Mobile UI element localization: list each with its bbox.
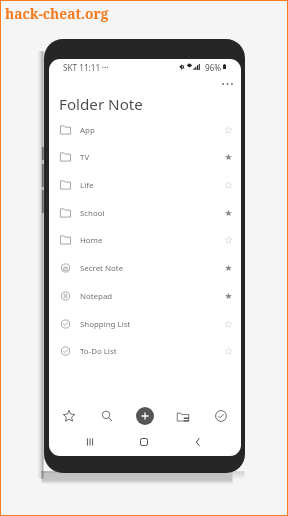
button[interactable]: More options xyxy=(215,72,239,96)
staticText: To-Do List xyxy=(80,346,117,357)
button[interactable]: Tasks xyxy=(210,405,232,427)
button[interactable]: Search xyxy=(96,405,118,427)
button[interactable]: Favourites xyxy=(58,405,80,427)
staticText: School xyxy=(80,208,105,219)
staticText: App xyxy=(80,125,95,136)
button[interactable]: App xyxy=(49,116,241,144)
staticText: Life xyxy=(80,180,94,191)
staticText: Notepad xyxy=(80,291,113,302)
button[interactable]: Life xyxy=(49,171,241,199)
staticText: Shopping List xyxy=(80,319,131,330)
button[interactable]: Add note xyxy=(136,407,154,425)
button[interactable]: School xyxy=(49,199,241,227)
button[interactable]: To-Do List xyxy=(49,337,241,365)
button[interactable]: Secret Note xyxy=(49,254,241,282)
button[interactable]: Home xyxy=(49,226,241,254)
staticText: Folder Note xyxy=(59,94,143,115)
staticText: TV xyxy=(80,152,90,163)
staticText: Home xyxy=(80,235,103,246)
button[interactable]: New folder xyxy=(172,405,194,427)
button[interactable]: TV xyxy=(49,143,241,171)
button[interactable]: Shopping List xyxy=(49,310,241,338)
button[interactable]: Home xyxy=(134,432,154,452)
button[interactable]: Notepad xyxy=(49,282,241,310)
staticText: Secret Note xyxy=(80,263,124,274)
staticText: SKT 11:11 xyxy=(63,62,101,73)
staticText: 96% xyxy=(205,62,222,73)
staticText: hack-cheat.org xyxy=(5,4,109,23)
button[interactable]: Recents xyxy=(80,432,100,452)
button[interactable]: Back xyxy=(188,432,208,452)
